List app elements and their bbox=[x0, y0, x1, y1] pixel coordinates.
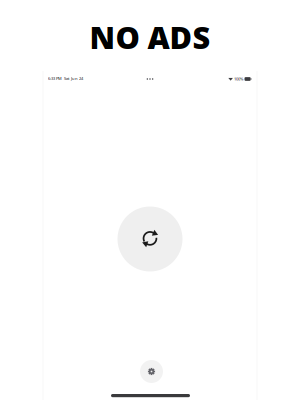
staticText: NO ADS bbox=[89, 17, 210, 57]
button[interactable]: Refresh bbox=[117, 206, 182, 271]
staticText: 100% bbox=[234, 76, 243, 82]
staticText: 6:33 PM Sat Jun 24 bbox=[48, 76, 83, 81]
button[interactable]: Settings bbox=[140, 360, 163, 383]
